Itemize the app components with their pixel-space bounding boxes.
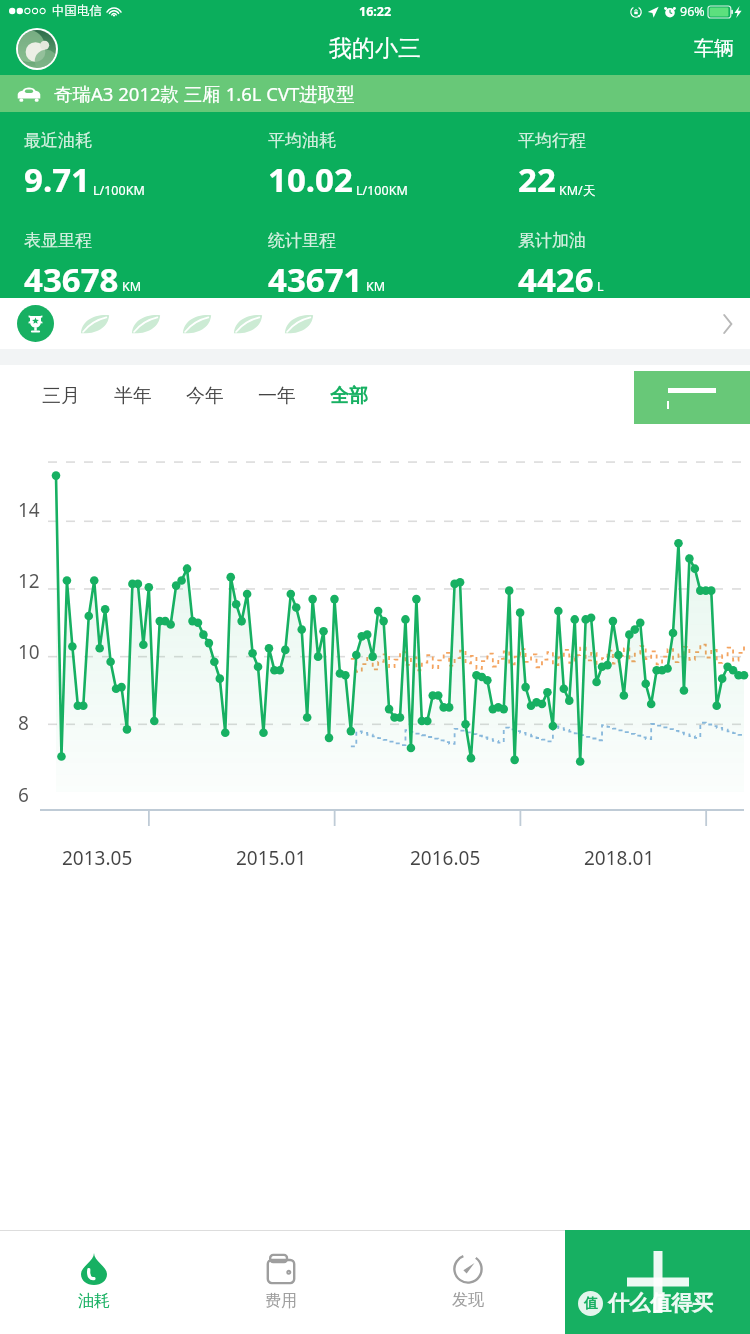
button[interactable]: 平均油耗 — [250, 130, 500, 202]
staticText: 费用 — [265, 1291, 297, 1311]
staticText: 6 — [18, 782, 29, 808]
staticText: 2015.01 — [236, 845, 307, 871]
staticText: 奇瑞A3 2012款 三厢 1.6L CVT进取型 — [54, 81, 355, 106]
staticText: 96% — [680, 3, 705, 20]
button[interactable]: 油耗 — [0, 1230, 187, 1334]
staticText: 8 — [18, 710, 29, 736]
button[interactable]: 全部 — [316, 374, 382, 418]
staticText: 油耗 — [78, 1291, 110, 1311]
staticText: 值 — [584, 1295, 598, 1313]
staticText: 4426 — [518, 257, 594, 298]
button[interactable]: 今年 — [172, 374, 238, 418]
button[interactable]: 半年 — [100, 374, 166, 418]
button[interactable]: Profile avatar — [16, 28, 58, 70]
staticText: 三月 — [42, 384, 80, 408]
staticText: KM/天 — [559, 182, 596, 199]
button[interactable]: 发现 — [374, 1230, 562, 1334]
button[interactable]: 奇瑞A3 2012款 三厢 1.6L CVT进取型 — [0, 75, 750, 112]
button[interactable]: 表显里程 — [0, 230, 250, 298]
staticText: 发现 — [452, 1290, 484, 1310]
staticText: 9.71 — [24, 157, 90, 202]
staticText: 16:22 — [359, 3, 392, 20]
button[interactable] — [0, 298, 750, 349]
staticText: 22 — [518, 157, 556, 202]
staticText: 10 — [18, 639, 40, 665]
staticText: 14 — [18, 497, 40, 523]
staticText: 43671 — [268, 257, 363, 298]
staticText: 什么值得买 — [608, 1290, 713, 1316]
button[interactable]: 累计加油 — [500, 230, 750, 298]
staticText: L/100KM — [93, 182, 145, 199]
staticText: 2013.05 — [62, 845, 133, 871]
button[interactable]: 三月 — [28, 374, 94, 418]
button[interactable]: 车辆 — [678, 28, 750, 69]
staticText: 平均行程 — [518, 130, 586, 151]
staticText: 平均油耗 — [268, 130, 336, 151]
staticText: 43678 — [24, 257, 119, 298]
staticText: 车辆 — [694, 36, 734, 61]
button[interactable]: Promotion — [634, 371, 750, 424]
staticText: 今年 — [186, 384, 224, 408]
staticText: 累计加油 — [518, 230, 586, 251]
button[interactable]: 统计里程 — [250, 230, 500, 298]
staticText: L/100KM — [356, 182, 408, 199]
staticText: KM — [122, 278, 142, 295]
staticText: 全部 — [330, 384, 368, 408]
button[interactable]: Add record — [565, 1230, 750, 1334]
staticText: 中国电信 — [52, 3, 102, 19]
staticText: 10.02 — [268, 157, 353, 202]
staticText: 2018.01 — [584, 845, 655, 871]
staticText: 我的小三 — [329, 34, 421, 63]
staticText: 最近油耗 — [24, 130, 92, 151]
button[interactable]: 平均行程 — [500, 130, 750, 202]
staticText: 12 — [18, 568, 40, 594]
staticText: 一年 — [258, 384, 296, 408]
button[interactable]: 一年 — [244, 374, 310, 418]
staticText: 统计里程 — [268, 230, 336, 251]
staticText: 表显里程 — [24, 230, 92, 251]
staticText: L — [597, 278, 604, 295]
staticText: 2016.05 — [410, 845, 481, 871]
button[interactable]: 最近油耗 — [0, 130, 250, 202]
staticText: 半年 — [114, 384, 152, 408]
button[interactable]: 费用 — [187, 1230, 374, 1334]
staticText: KM — [366, 278, 386, 295]
